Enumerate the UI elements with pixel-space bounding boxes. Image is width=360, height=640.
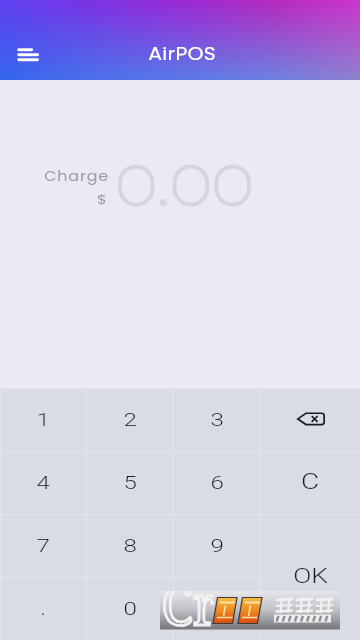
- button[interactable]: 3: [174, 389, 260, 451]
- staticText: 3: [210, 408, 224, 430]
- staticText: AirPOS: [148, 42, 217, 66]
- button[interactable]: C: [261, 452, 360, 514]
- button[interactable]: 7: [1, 515, 86, 577]
- staticText: $: [97, 190, 108, 208]
- button[interactable]: 6: [174, 452, 260, 514]
- button[interactable]: OK: [261, 515, 360, 640]
- button[interactable]: 1: [1, 389, 86, 451]
- staticText: OK: [293, 564, 329, 589]
- staticText: 8: [123, 534, 137, 556]
- button[interactable]: Menu: [5, 33, 51, 67]
- button[interactable]: Backspace: [261, 389, 360, 451]
- staticText: 4: [36, 471, 50, 493]
- staticText: 1: [36, 408, 50, 430]
- staticText: 0: [123, 597, 137, 619]
- button[interactable]: 8: [87, 515, 173, 577]
- button[interactable]: 2: [87, 389, 173, 451]
- button[interactable]: [174, 578, 260, 640]
- staticText: Charge: [44, 165, 110, 186]
- staticText: Cr: [161, 591, 214, 629]
- staticText: .: [40, 597, 47, 619]
- button[interactable]: 5: [87, 452, 173, 514]
- staticText: 6: [210, 471, 224, 493]
- button[interactable]: 4: [1, 452, 86, 514]
- button[interactable]: 0: [87, 578, 173, 640]
- staticText: 9: [210, 534, 224, 556]
- staticText: 5: [123, 471, 137, 493]
- staticText: 2: [123, 408, 137, 430]
- button[interactable]: 9: [174, 515, 260, 577]
- staticText: C: [301, 469, 320, 495]
- staticText: 7: [36, 534, 50, 556]
